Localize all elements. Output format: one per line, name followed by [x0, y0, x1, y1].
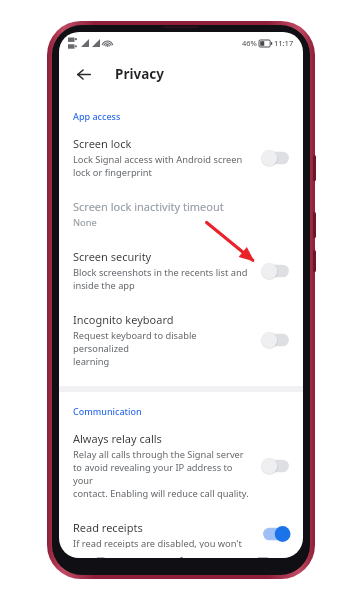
staticText: None [73, 216, 97, 229]
staticText: Screen lock [73, 136, 132, 151]
button[interactable]: Toggle on [261, 525, 291, 543]
staticText: Read receipts [73, 520, 143, 535]
staticText: Always relay calls [73, 431, 162, 446]
button[interactable]: Incognito keyboard [59, 302, 303, 378]
button[interactable]: Toggle off [261, 262, 291, 280]
staticText: Screen security [73, 249, 152, 264]
staticText: Privacy [115, 65, 164, 83]
staticText: 11:17 [274, 38, 294, 48]
button[interactable]: Back [67, 58, 99, 90]
staticText: Incognito keyboard [73, 312, 174, 327]
button[interactable]: Screen security [59, 239, 303, 302]
staticText: Block screenshots in the recents list an… [73, 266, 248, 292]
staticText: Request keyboard to disable personalized… [73, 329, 251, 368]
button[interactable]: Toggle off [261, 149, 291, 167]
staticText: Relay all calls through the Signal serve… [73, 448, 251, 500]
staticText: App access [73, 110, 121, 122]
staticText: Lock Signal access with Android screen l… [73, 153, 243, 179]
button[interactable]: Screen lock inactivity timeout [59, 189, 303, 239]
button[interactable]: Toggle off [261, 331, 291, 349]
button[interactable]: Always relay calls [59, 421, 303, 510]
staticText: If read receipts are disabled, you won't… [73, 537, 251, 548]
button[interactable]: Read receipts [59, 510, 303, 558]
staticText: Communication [73, 405, 142, 417]
button[interactable]: Toggle off [261, 457, 291, 475]
staticText: 46% [242, 38, 257, 48]
button[interactable]: Screen lock [59, 126, 303, 189]
staticText: Screen lock inactivity timeout [73, 199, 224, 214]
